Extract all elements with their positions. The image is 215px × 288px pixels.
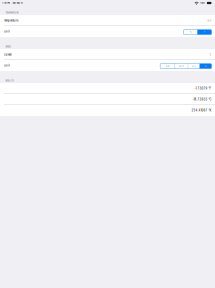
- staticText: kn: [205, 65, 207, 67]
- staticText: Unit: [4, 64, 10, 67]
- staticText: m/s: [192, 65, 196, 67]
- staticText: 1:00 PM: [2, 2, 10, 4]
- button[interactable]: Unit: [0, 26, 215, 37]
- staticText: °F: [203, 31, 205, 33]
- button[interactable]: °C: [183, 28, 211, 34]
- staticText: km/h: [179, 65, 184, 67]
- button[interactable]: Temperature: [0, 15, 215, 26]
- button[interactable]: 254.41067 °K: [0, 105, 215, 116]
- staticText: Temperature: [4, 19, 18, 22]
- staticText: mph: [166, 65, 170, 67]
- staticText: RESULTS: [5, 79, 13, 82]
- staticText: -20: [206, 19, 211, 22]
- button[interactable]: -18.73933 °C: [0, 94, 215, 105]
- staticText: 5: [209, 53, 211, 56]
- staticText: Unit: [4, 30, 10, 33]
- button[interactable]: Unit: [0, 60, 215, 71]
- staticText: 254.41067 °K: [191, 109, 211, 112]
- staticText: SPEED: [5, 45, 11, 48]
- staticText: TEMPERATURE: [5, 11, 18, 14]
- staticText: Speed: [4, 53, 12, 56]
- button[interactable]: mph: [160, 62, 211, 68]
- staticText: Sun Sep 10: [12, 2, 22, 4]
- staticText: 100%: [200, 2, 205, 4]
- button[interactable]: Speed: [0, 49, 215, 60]
- staticText: °C: [189, 31, 191, 33]
- staticText: -18.73933 °C: [192, 98, 211, 101]
- button[interactable]: -1.73079 °F: [0, 83, 215, 94]
- staticText: -1.73079 °F: [194, 87, 211, 90]
